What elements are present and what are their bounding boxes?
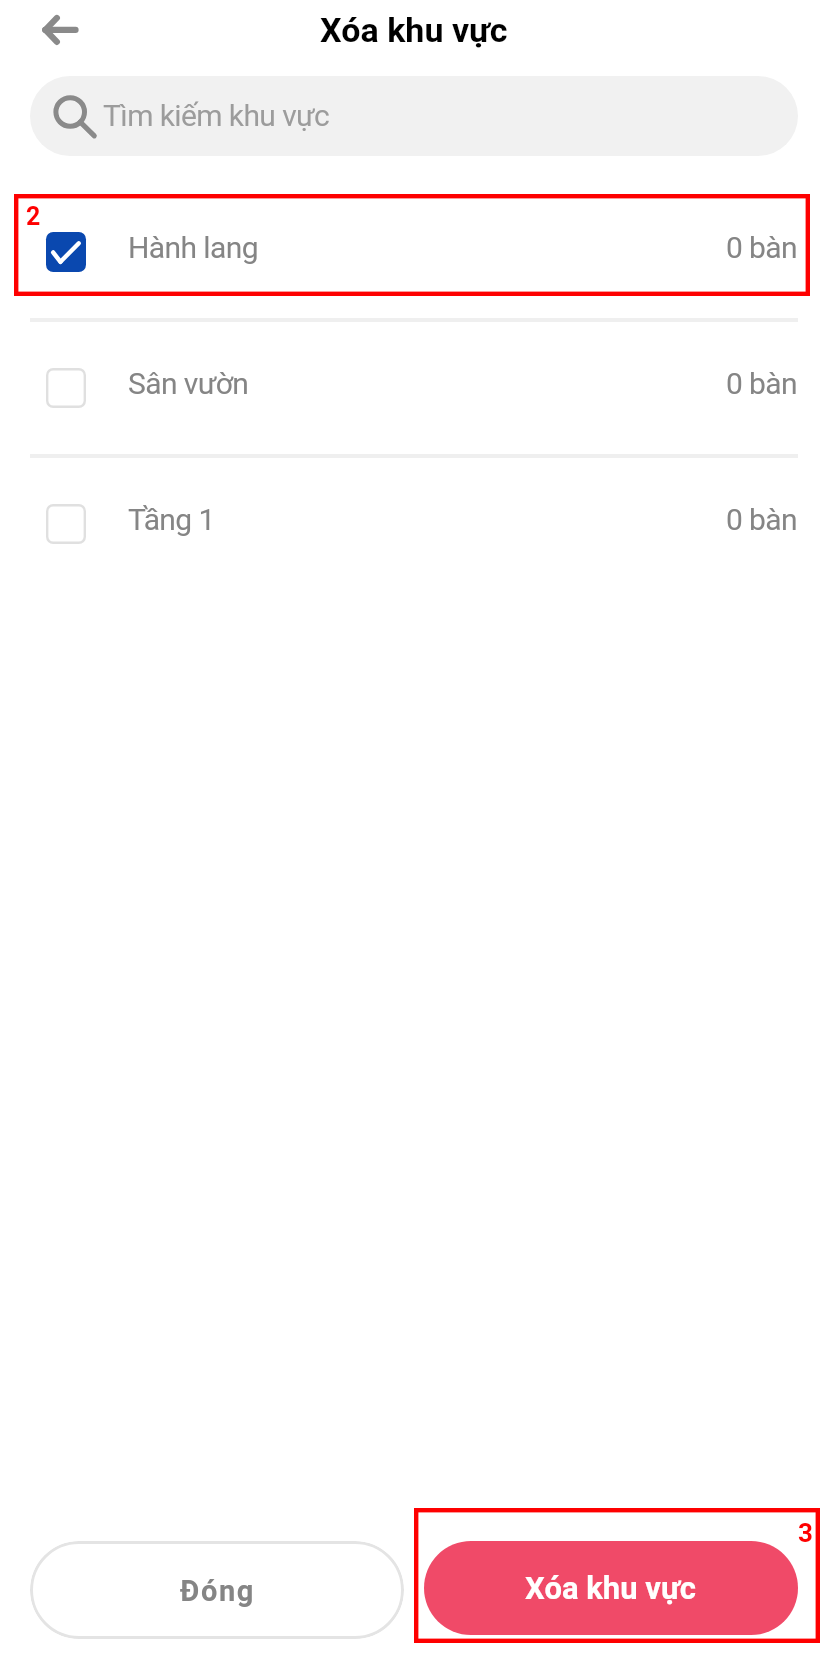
button[interactable]: Xóa khu vực <box>424 1541 798 1635</box>
staticText: Đóng <box>180 1574 255 1608</box>
staticText: Xóa khu vực <box>525 1570 697 1606</box>
staticText: Sân vườn <box>128 366 249 401</box>
button[interactable]: Đóng <box>30 1541 404 1639</box>
staticText: Hành lang <box>128 230 258 265</box>
staticText: Tìm kiếm khu vực <box>103 98 330 133</box>
staticText: 2 <box>26 202 41 231</box>
staticText: Xóa khu vực <box>320 10 508 50</box>
button[interactable]: Hành lang <box>0 184 828 320</box>
staticText: 0 bàn <box>726 366 798 401</box>
button[interactable]: Tìm kiếm khu vực <box>30 76 798 156</box>
button[interactable]: Back <box>30 0 90 60</box>
staticText: 0 bàn <box>726 230 798 265</box>
staticText: 3 <box>798 1518 813 1548</box>
button[interactable]: Sân vườn <box>0 320 828 456</box>
staticText: 0 bàn <box>726 502 798 537</box>
button[interactable]: Tầng 1 <box>0 456 828 592</box>
staticText: Tầng 1 <box>128 502 215 537</box>
